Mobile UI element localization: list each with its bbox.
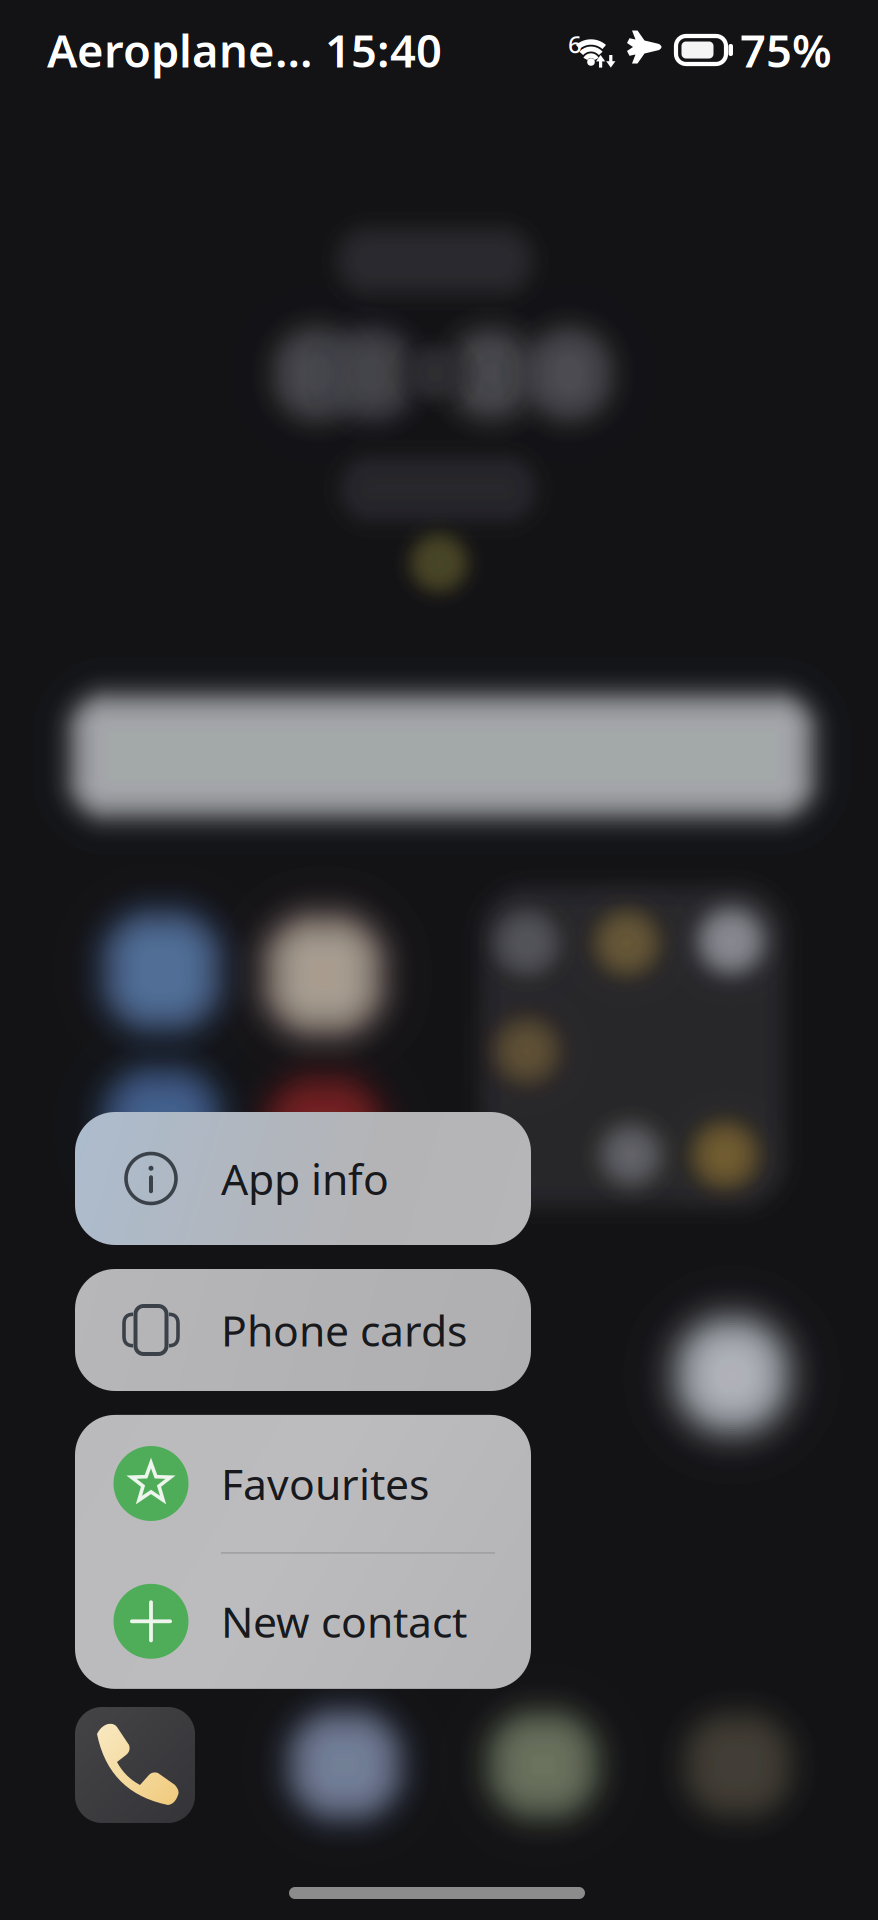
staticText: Aeroplane… 15:40 [47,20,442,80]
staticText: Phone cards [221,1302,467,1358]
staticText: 6 [568,28,582,60]
button[interactable]: Phone cards [75,1269,531,1391]
staticText: New contact [221,1593,467,1650]
button[interactable]: Favourites [75,1415,531,1552]
staticText: 75% [740,20,832,80]
staticText: Favourites [221,1455,429,1512]
button[interactable]: Phone [75,1707,195,1823]
staticText: App info [221,1150,389,1207]
button[interactable]: New contact [75,1554,531,1689]
button[interactable]: App info [75,1112,531,1245]
